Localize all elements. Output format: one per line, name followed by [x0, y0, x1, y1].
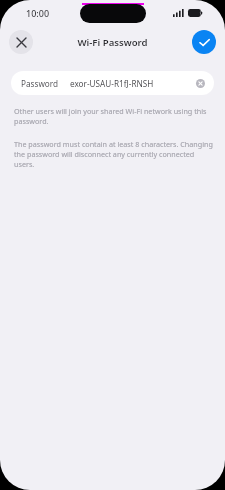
staticText: 10:00	[26, 7, 50, 19]
button[interactable]: Close	[9, 30, 33, 54]
staticText: Password	[21, 78, 59, 89]
staticText: Other users will join your shared Wi-Fi …	[14, 106, 207, 126]
staticText: exor-USAU-R1fJ-RNSH	[70, 78, 154, 89]
button[interactable]: Password	[11, 71, 214, 95]
button[interactable]: Clear password	[195, 78, 206, 89]
staticText: Wi-Fi Password	[77, 36, 148, 49]
button[interactable]: Save password	[192, 30, 216, 54]
staticText: The password must contain at least 8 cha…	[14, 139, 213, 169]
